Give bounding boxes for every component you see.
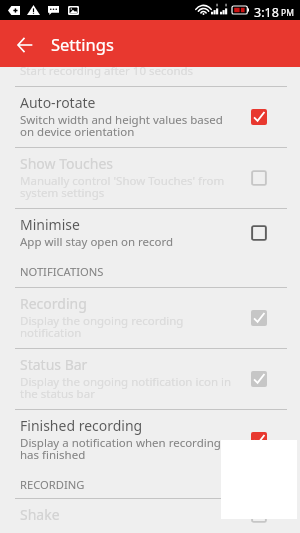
button[interactable]: Checked [245, 304, 273, 332]
button[interactable]: Unchecked [245, 505, 273, 525]
staticText: Display the ongoing notification icon in… [20, 374, 232, 402]
staticText: Display the ongoing recording notificati… [20, 313, 184, 341]
staticText: App will stay open on record [20, 234, 174, 250]
button[interactable]: Checked [245, 365, 273, 393]
button[interactable]: Show Touches [0, 148, 300, 208]
staticText: Display a notification when recording ha… [20, 435, 221, 463]
staticText: Start recording after 10 seconds [20, 63, 194, 79]
staticText: Status Bar [20, 355, 88, 374]
button[interactable]: Shake [0, 499, 300, 533]
staticText: Shake [20, 505, 60, 524]
staticText: Auto-rotate [20, 93, 96, 112]
button[interactable]: Finished recording [0, 410, 300, 470]
staticText: Minimise [20, 215, 80, 234]
staticText: Switch width and height values based on … [20, 112, 223, 140]
button[interactable]: Unchecked [245, 219, 273, 247]
staticText: Finished recording [20, 416, 143, 435]
staticText: Settings [51, 33, 114, 55]
button[interactable]: Start recording after 10 seconds [0, 67, 300, 86]
staticText: NOTIFICATIONS [20, 264, 104, 279]
staticText: Manually control 'Show Touches' from sys… [20, 173, 225, 201]
button[interactable]: Recording [0, 288, 300, 348]
button[interactable]: Minimise [0, 209, 300, 257]
button[interactable]: Back [0, 20, 48, 67]
staticText: Recording [20, 294, 87, 313]
button[interactable]: Unchecked [245, 164, 273, 192]
button[interactable]: Checked [245, 426, 273, 454]
staticText: Show Touches [20, 154, 114, 173]
button[interactable]: Status Bar [0, 349, 300, 409]
staticText: RECORDING [20, 477, 85, 492]
staticText: 3:18 [254, 4, 279, 21]
staticText: PM [281, 7, 294, 19]
button[interactable]: Checked [245, 103, 273, 131]
button[interactable]: Auto-rotate [0, 87, 300, 147]
